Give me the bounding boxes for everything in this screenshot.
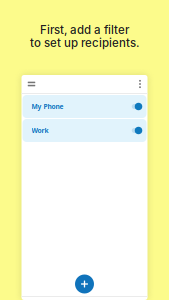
button[interactable]: My Phone (22, 95, 146, 118)
staticText: My Phone (31, 102, 63, 111)
button[interactable]: Menu (21, 75, 41, 93)
staticText: Work (31, 126, 48, 135)
button[interactable]: Work (22, 119, 146, 142)
button[interactable]: More options (132, 75, 147, 93)
staticText: to set up recipients. (30, 36, 139, 50)
staticText: First, add a filter (40, 23, 129, 37)
button[interactable]: Add filter (71, 271, 97, 297)
